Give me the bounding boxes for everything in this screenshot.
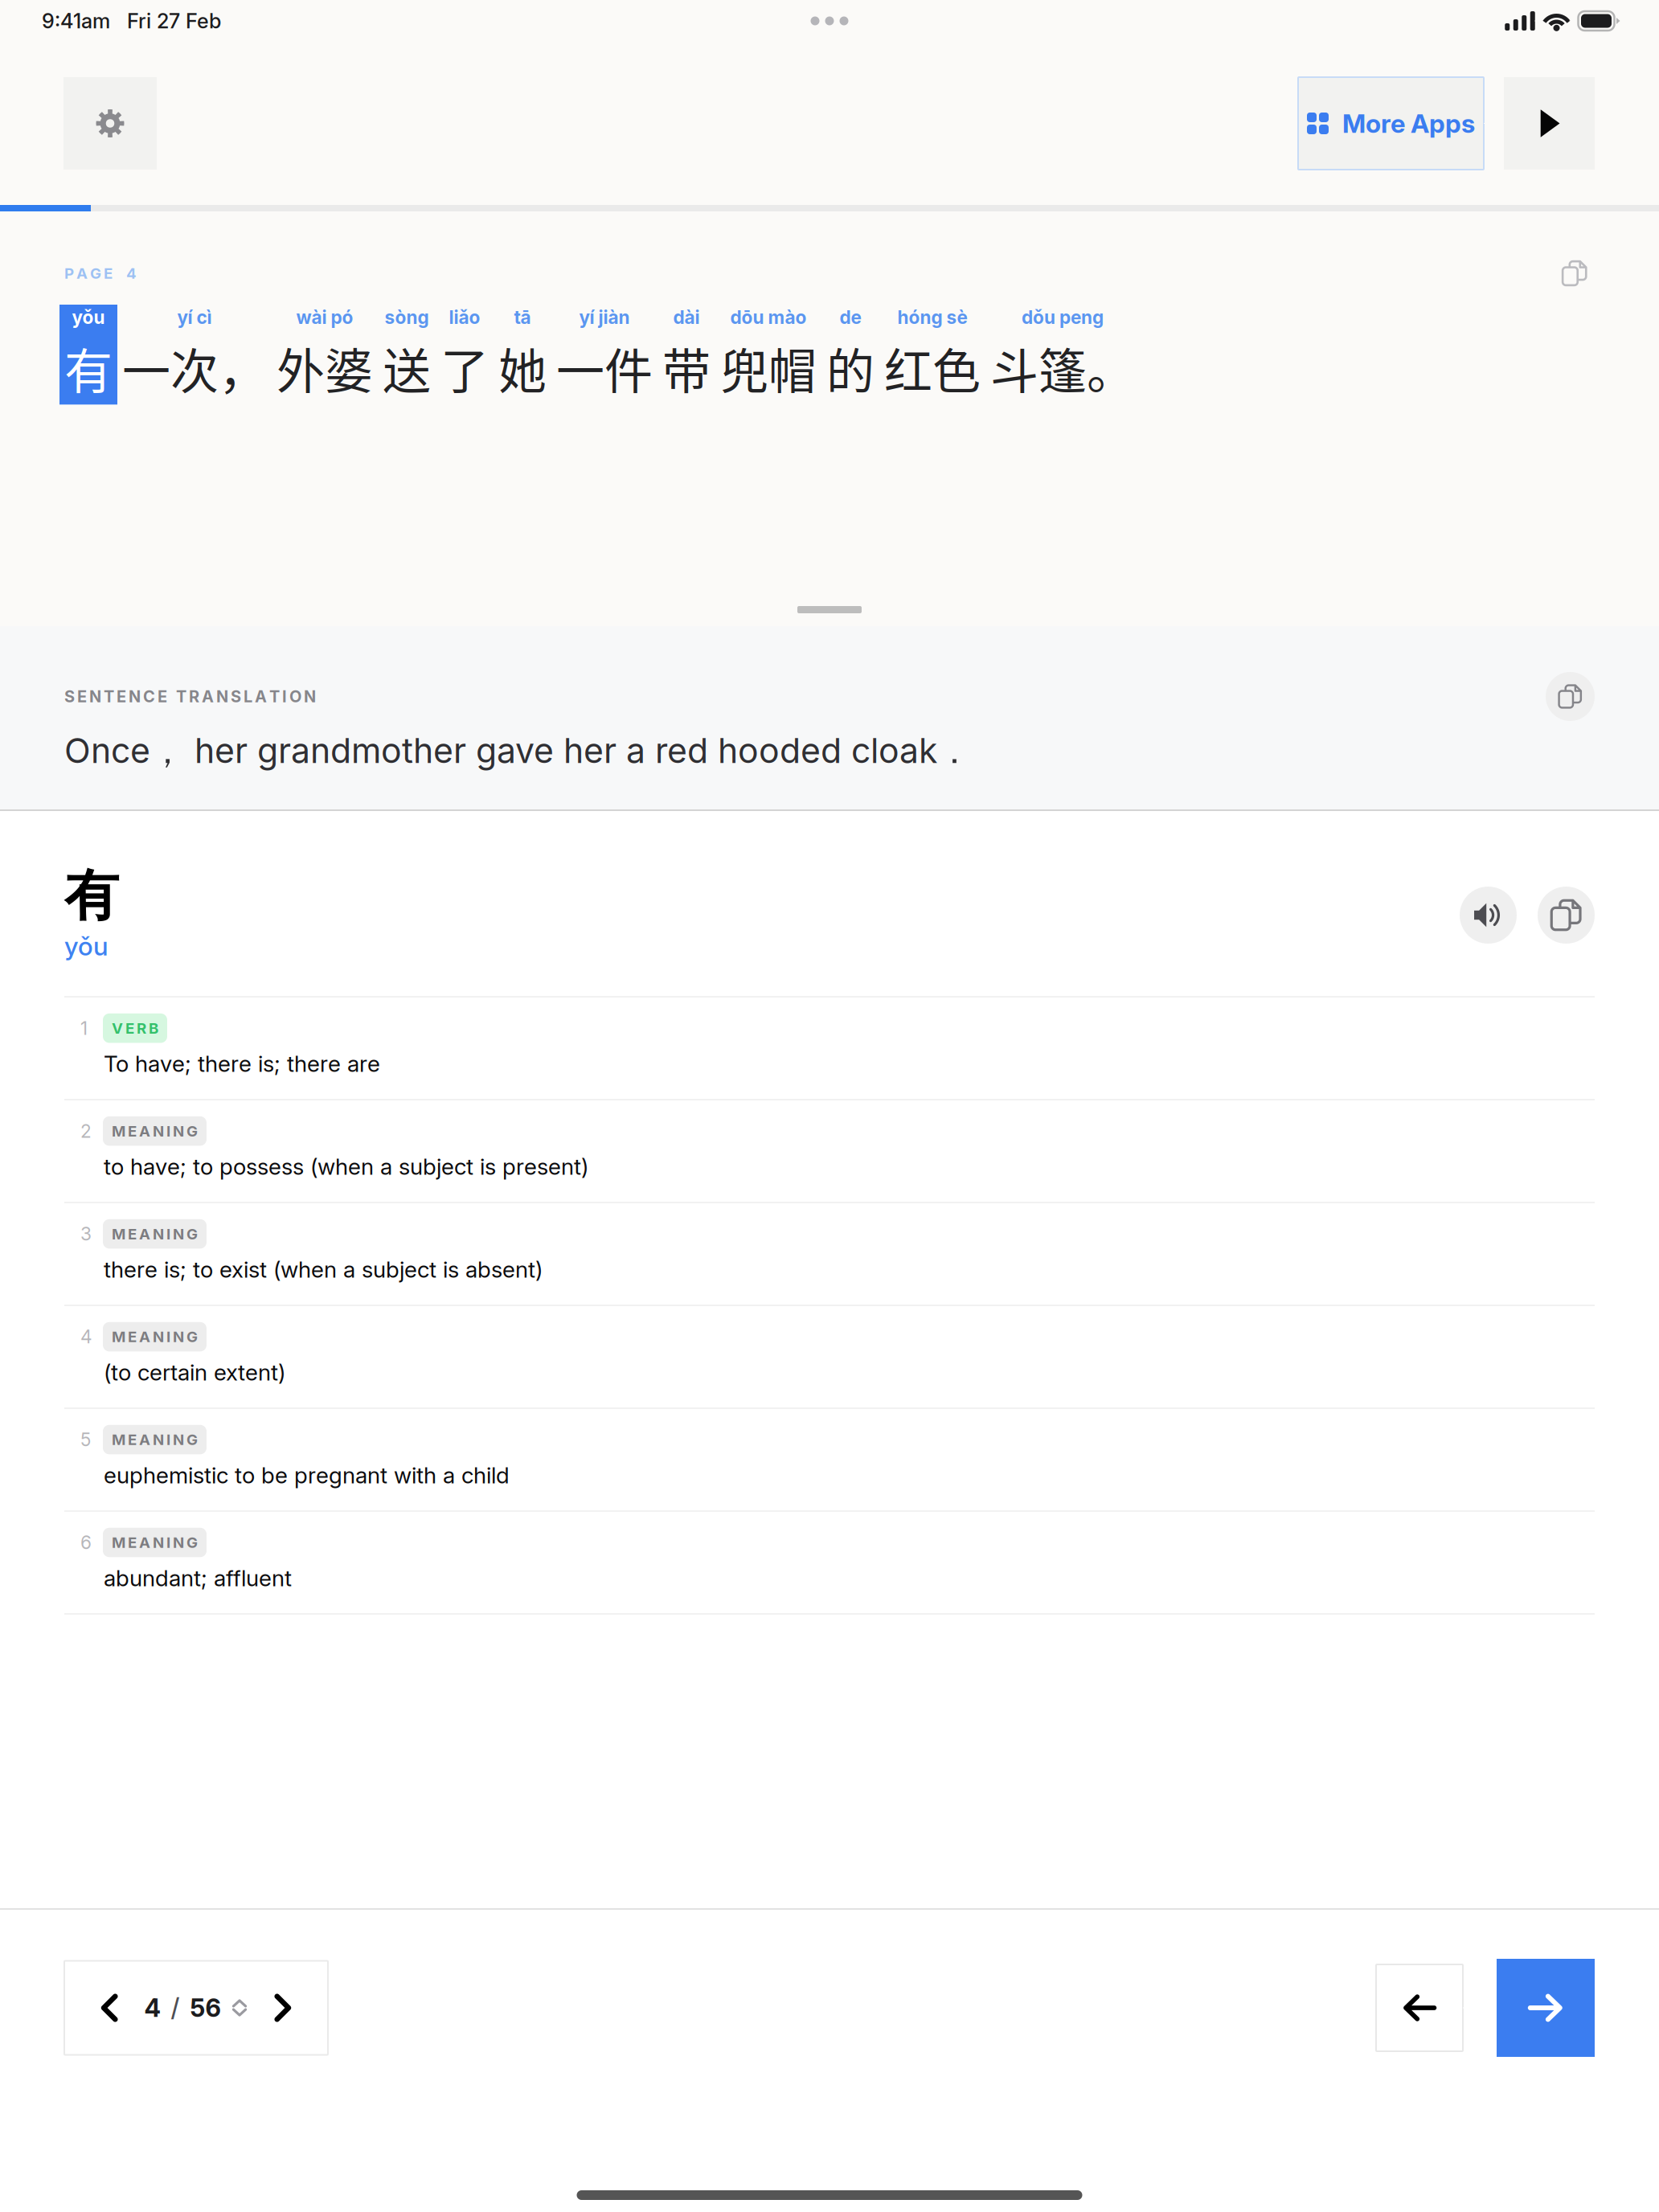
staticText: 一件 <box>556 333 653 403</box>
staticText: yǒu <box>64 931 109 962</box>
button[interactable]: Copy word <box>1538 887 1595 944</box>
staticText: there is; to exist (when a subject is ab… <box>104 1256 543 1283</box>
button[interactable]: yí cì <box>117 305 272 405</box>
staticText: 56 <box>190 1993 221 2023</box>
button[interactable]: tā <box>494 305 551 405</box>
button[interactable]: Previous page <box>85 1983 135 2033</box>
button[interactable]: Play pronunciation <box>1460 887 1517 944</box>
button[interactable]: yǒu <box>59 305 117 405</box>
staticText: 有 <box>64 862 119 931</box>
staticText: to have; to possess (when a subject is p… <box>104 1153 588 1180</box>
staticText: 她 <box>498 333 547 403</box>
staticText: / <box>171 1993 180 2023</box>
staticText: More Apps <box>1342 108 1475 139</box>
button[interactable]: Next page <box>258 1983 307 2033</box>
staticText: 送 <box>383 333 431 403</box>
staticText: euphemistic to be pregnant with a child <box>104 1462 510 1489</box>
staticText: 4 <box>144 1993 160 2023</box>
staticText: M E A N I N G <box>112 1533 198 1552</box>
staticText: M E A N I N G <box>112 1225 198 1243</box>
button[interactable]: More Apps <box>1298 77 1484 170</box>
staticText: de <box>840 306 861 328</box>
staticText: abundant; affluent <box>104 1564 292 1592</box>
staticText: P A G E 4 <box>64 264 137 282</box>
staticText: M E A N I N G <box>112 1328 198 1346</box>
staticText: 斗篷。 <box>990 333 1135 403</box>
staticText: yí cì <box>177 306 212 328</box>
staticText: dǒu peng <box>1022 306 1104 328</box>
staticText: 红色 <box>884 333 981 403</box>
staticText: 一次， <box>122 333 267 403</box>
staticText: 2 <box>80 1120 92 1142</box>
button[interactable]: Settings <box>63 77 157 170</box>
button[interactable]: wài pó <box>272 305 378 405</box>
staticText: wài pó <box>296 306 353 328</box>
staticText: dài <box>673 306 700 328</box>
button[interactable]: yí jiàn <box>551 305 657 405</box>
staticText: S E N T E N C E T R A N S L A T I O N <box>64 687 316 706</box>
staticText: hóng sè <box>897 306 967 328</box>
button[interactable]: hóng sè <box>879 305 985 405</box>
button[interactable]: Previous word <box>1376 1964 1463 2051</box>
staticText: 的 <box>826 333 875 403</box>
staticText: 带 <box>662 333 711 403</box>
button[interactable]: dài <box>657 305 715 405</box>
staticText: 了 <box>440 333 489 403</box>
button[interactable]: Copy translation <box>1546 672 1595 721</box>
staticText: yǒu <box>72 306 105 328</box>
button[interactable]: dōu mào <box>715 305 821 405</box>
staticText: (to certain extent) <box>104 1359 285 1386</box>
staticText: yí jiàn <box>579 306 630 328</box>
staticText: Once， her grandmother gave her a red hoo… <box>64 730 972 773</box>
staticText: M E A N I N G <box>112 1122 198 1140</box>
staticText: 5 <box>80 1429 91 1451</box>
staticText: V E R B <box>112 1019 158 1037</box>
staticText: tā <box>514 306 531 328</box>
staticText: To have; there is; there are <box>104 1050 380 1077</box>
staticText: 兜帽 <box>720 333 817 403</box>
staticText: 3 <box>80 1223 92 1245</box>
button[interactable]: Play <box>1504 77 1595 170</box>
staticText: dōu mào <box>730 306 807 328</box>
button[interactable]: sòng <box>378 305 436 405</box>
button[interactable]: dǒu peng <box>985 305 1140 405</box>
button[interactable]: liǎo <box>436 305 494 405</box>
staticText: 有 <box>64 333 113 403</box>
button[interactable]: Copy sentence <box>1555 253 1595 293</box>
staticText: M E A N I N G <box>112 1430 198 1449</box>
staticText: 1 <box>80 1017 88 1039</box>
staticText: sòng <box>385 306 429 328</box>
staticText: 9:41am <box>42 9 110 33</box>
button[interactable]: de <box>821 305 879 405</box>
staticText: Fri 27 Feb <box>110 9 221 33</box>
staticText: 4 <box>80 1326 92 1348</box>
button[interactable]: Next word <box>1497 1959 1595 2057</box>
staticText: 外婆 <box>276 333 373 403</box>
staticText: liǎo <box>449 306 480 328</box>
staticText: 6 <box>80 1531 92 1553</box>
